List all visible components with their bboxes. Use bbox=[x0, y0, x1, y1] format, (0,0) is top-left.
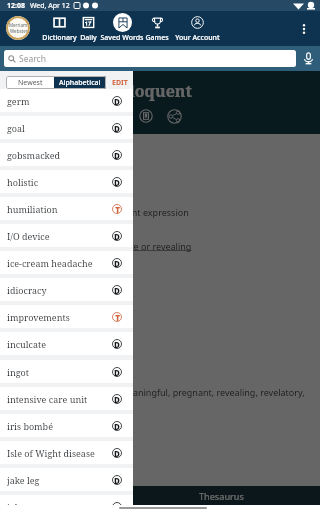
staticText: improvements bbox=[7, 311, 70, 323]
button[interactable]: Save word bbox=[139, 109, 153, 123]
button[interactable]: idiocracy bbox=[7, 278, 122, 301]
staticText: D bbox=[114, 258, 120, 268]
staticText: Your Account bbox=[175, 33, 220, 43]
button[interactable]: Search bbox=[4, 50, 296, 67]
staticText: Games bbox=[145, 33, 169, 43]
button[interactable]: Games bbox=[127, 11, 187, 46]
staticText: jalopy bbox=[7, 501, 34, 512]
staticText: D bbox=[114, 96, 120, 106]
staticText: Thesaurus bbox=[199, 490, 244, 502]
button[interactable]: goal bbox=[7, 116, 122, 139]
button[interactable]: Alphabetical bbox=[54, 76, 106, 89]
staticText: Alphabetical bbox=[59, 78, 101, 88]
staticText: D bbox=[114, 475, 120, 485]
staticText: D bbox=[114, 394, 120, 404]
staticText: 2 : vividly or movingly expressive or re… bbox=[1, 240, 192, 252]
staticText: T bbox=[115, 204, 120, 214]
staticText: Isle of Wight disease bbox=[7, 447, 95, 459]
button[interactable]: iris bombé bbox=[7, 414, 122, 437]
button[interactable]: intensive care unit bbox=[7, 387, 122, 410]
button[interactable]: Merriam-Webster home bbox=[6, 16, 30, 40]
button[interactable]: Saved Words bbox=[92, 11, 152, 46]
staticText: D bbox=[114, 367, 120, 377]
staticText: inculcate bbox=[7, 338, 47, 350]
staticText: Webster bbox=[10, 28, 28, 34]
button[interactable]: improvements bbox=[7, 305, 122, 328]
button[interactable]: Dictionary bbox=[29, 11, 89, 46]
staticText: Daily bbox=[80, 33, 97, 43]
button[interactable]: Thesaurus bbox=[0, 486, 320, 505]
staticText: Merriam bbox=[9, 22, 28, 28]
button[interactable]: jalopy bbox=[7, 495, 122, 512]
staticText: D bbox=[114, 150, 120, 160]
staticText: goal bbox=[7, 122, 25, 134]
staticText: I/O device bbox=[7, 230, 50, 242]
staticText: D bbox=[114, 231, 120, 241]
staticText: D bbox=[114, 123, 120, 133]
staticText: T bbox=[115, 312, 120, 322]
staticText: gobsmacked bbox=[7, 149, 61, 161]
button[interactable]: Share bbox=[167, 109, 182, 124]
staticText: Saved Words bbox=[100, 33, 144, 43]
staticText: ingot bbox=[7, 366, 29, 378]
button[interactable]: jake leg bbox=[7, 468, 122, 491]
staticText: 1 : marked by forceful and fluent expres… bbox=[3, 206, 189, 218]
staticText: Newest bbox=[18, 78, 43, 88]
staticText: Search bbox=[19, 53, 46, 65]
staticText: ice-cream headache bbox=[7, 257, 93, 269]
staticText: germ bbox=[7, 95, 30, 107]
staticText: humiliation bbox=[7, 203, 58, 215]
button[interactable]: Isle of Wight disease bbox=[7, 441, 122, 464]
button[interactable]: inculcate bbox=[7, 332, 122, 355]
button[interactable]: More options bbox=[295, 20, 313, 38]
staticText: expressive, meaning, meaningful, pregnan… bbox=[28, 386, 320, 410]
button[interactable]: Voice search bbox=[296, 46, 320, 71]
button[interactable]: ice-cream headache bbox=[7, 251, 122, 274]
button[interactable]: EDIT bbox=[108, 76, 132, 89]
button[interactable]: gobsmacked bbox=[7, 143, 122, 166]
staticText: idiocracy bbox=[7, 284, 47, 296]
staticText: jake leg bbox=[7, 474, 40, 486]
staticText: D bbox=[114, 448, 120, 458]
button[interactable]: Your Account bbox=[167, 11, 227, 46]
button[interactable]: Newest bbox=[6, 76, 54, 89]
button[interactable]: germ bbox=[7, 89, 122, 112]
staticText: Wed, Apr 12 bbox=[30, 1, 70, 11]
staticText: holistic bbox=[7, 176, 39, 188]
staticText: intensive care unit bbox=[7, 393, 88, 405]
staticText: D bbox=[114, 502, 120, 512]
staticText: 12:08 bbox=[7, 1, 25, 11]
staticText: D bbox=[114, 285, 120, 295]
button[interactable]: humiliation bbox=[7, 197, 122, 220]
button[interactable]: I/O device bbox=[7, 224, 122, 247]
staticText: D bbox=[114, 421, 120, 431]
button[interactable]: Daily bbox=[58, 11, 118, 46]
button[interactable]: holistic bbox=[7, 170, 122, 193]
staticText: eloquent bbox=[120, 80, 192, 102]
button[interactable]: ingot bbox=[7, 360, 122, 383]
staticText: D bbox=[114, 339, 120, 349]
staticText: iris bombé bbox=[7, 420, 53, 432]
staticText: D bbox=[114, 177, 120, 187]
staticText: EDIT bbox=[112, 78, 128, 88]
staticText: Dictionary bbox=[42, 33, 77, 43]
